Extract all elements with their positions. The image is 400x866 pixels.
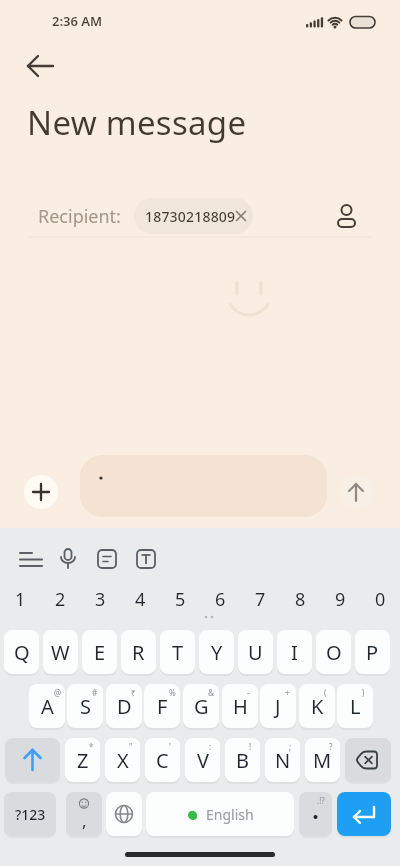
staticText: P [366,639,379,666]
button[interactable]: B [225,738,260,782]
button[interactable] [299,792,332,836]
staticText: ; [289,741,292,752]
button[interactable]: 3 [80,586,120,612]
button[interactable]: T [160,630,195,674]
staticText: ? [329,741,333,752]
staticText: & [208,687,214,698]
button[interactable]: 1 [0,586,40,612]
staticText: J [275,693,281,720]
button[interactable]: 0 [360,586,400,612]
staticText: ?123 [15,805,46,824]
button[interactable]: A [29,684,65,728]
button[interactable]: O [316,630,351,674]
staticText: D [117,693,132,720]
button[interactable]: P [355,630,390,674]
button[interactable]: N [265,738,300,782]
staticText: ₹ [131,687,136,698]
button[interactable] [80,455,327,517]
button[interactable]: J [260,684,296,728]
staticText: 3 [95,587,106,612]
button[interactable]: Q [4,630,39,674]
staticText: 4 [135,587,146,612]
button[interactable]: ?123 [4,792,56,836]
staticText: 18730218809 [145,207,236,226]
button[interactable]: , [66,792,102,836]
staticText: * [89,741,94,752]
staticText: Y [211,639,223,666]
button[interactable]: E [82,630,117,674]
staticText: M [313,747,332,774]
staticText: % [169,687,176,698]
staticText: E [94,639,106,666]
button[interactable]: 4 [120,586,160,612]
staticText: + [285,687,290,698]
button[interactable]: I [277,630,312,674]
staticText: F [157,693,168,720]
staticText: 8 [295,587,306,612]
staticText: 7 [255,587,266,612]
staticText: - [247,687,250,698]
staticText: G [194,693,209,720]
button[interactable]: F [144,684,180,728]
button[interactable] [337,792,391,836]
button[interactable]: K [299,684,335,728]
button[interactable] [339,475,373,509]
button[interactable] [18,52,62,82]
staticText: Recipient: [38,204,121,229]
staticText: K [311,693,324,720]
button[interactable]: X [105,738,140,782]
staticText: 0 [375,587,386,612]
button[interactable]: C [145,738,180,782]
button[interactable] [24,475,58,509]
staticText: U [248,639,263,666]
button[interactable]: R [121,630,156,674]
staticText: 5 [175,587,186,612]
button[interactable]: V [185,738,220,782]
button[interactable]: L [337,684,373,728]
button[interactable]: 18730218809 [134,198,253,234]
button[interactable] [5,738,60,782]
button[interactable]: 6 [200,586,240,612]
button[interactable]: M [305,738,340,782]
staticText: .!? [317,795,325,806]
button[interactable]: 9 [320,586,360,612]
button[interactable] [330,198,366,234]
staticText: I [291,639,298,666]
staticText: Q [14,639,30,666]
staticText: L [350,693,361,720]
button[interactable]: D [106,684,142,728]
staticText: 2:36 AM [52,12,103,30]
button[interactable]: Z [65,738,100,782]
button[interactable]: 7 [240,586,280,612]
button[interactable]: 8 [280,586,320,612]
button[interactable]: G [183,684,219,728]
staticText: New message [27,100,247,145]
staticText: ( [324,687,327,698]
button[interactable]: Y [199,630,234,674]
staticText: 2 [55,587,66,612]
button[interactable]: H [222,684,258,728]
staticText: , [82,809,87,832]
staticText: B [236,747,249,774]
button[interactable] [345,738,391,782]
staticText: A [41,693,54,720]
button[interactable]: W [43,630,78,674]
button[interactable]: 5 [160,586,200,612]
button[interactable]: S [67,684,103,728]
staticText: " [129,741,133,752]
button[interactable]: English [146,792,294,836]
staticText: W [51,639,70,666]
staticText: R [132,639,145,666]
staticText: Z [77,747,89,774]
staticText: V [197,747,209,774]
button[interactable]: 2 [40,586,80,612]
button[interactable]: U [238,630,273,674]
staticText: T [172,639,184,666]
staticText: 6 [215,587,226,612]
staticText: ' [169,741,171,752]
staticText: 9 [335,587,346,612]
staticText: C [156,747,169,774]
button[interactable] [106,792,142,836]
staticText: @ [54,687,62,698]
staticText: H [233,693,248,720]
